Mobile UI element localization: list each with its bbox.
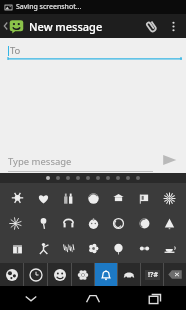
button[interactable]: Symbols	[141, 263, 163, 286]
button[interactable]: Emoji 6	[134, 188, 154, 208]
button[interactable]: Emoji 8	[7, 213, 27, 233]
staticText: !?#	[148, 270, 158, 280]
button[interactable]: Smileys	[48, 263, 71, 286]
button[interactable]: Emoji 3	[58, 188, 78, 208]
button[interactable]: Backspace	[164, 263, 186, 286]
button[interactable]: Objects	[95, 263, 117, 286]
button[interactable]: Emoji 4	[83, 188, 103, 208]
button[interactable]: Emoji 12	[108, 213, 128, 233]
button[interactable]: More options	[164, 17, 182, 35]
button[interactable]: Emoji 9	[33, 213, 53, 233]
button[interactable]: Emoji 21	[159, 238, 179, 258]
button[interactable]: Language	[0, 263, 23, 286]
staticText: New message	[29, 19, 103, 34]
button[interactable]: Emoji 15	[7, 238, 27, 258]
button[interactable]: Emoji 20	[134, 238, 154, 258]
button[interactable]: Emoji 7	[159, 188, 179, 208]
staticText: Type message	[8, 155, 72, 168]
button[interactable]: Emoji 2	[33, 188, 53, 208]
button[interactable]: Places	[118, 263, 140, 286]
button[interactable]: Home	[62, 286, 124, 310]
button[interactable]: Send	[157, 148, 181, 172]
button[interactable]: Emoji 19	[108, 238, 128, 258]
button[interactable]: Hide keyboard	[0, 286, 62, 310]
staticText: Saving screenshot...	[16, 2, 82, 12]
button[interactable]: To	[8, 43, 182, 58]
button[interactable]: Recent	[24, 263, 47, 286]
button[interactable]: Emoji 17	[58, 238, 78, 258]
button[interactable]: Emoji 13	[134, 213, 154, 233]
button[interactable]: Emoji 11	[83, 213, 103, 233]
button[interactable]: Nature	[72, 263, 94, 286]
button[interactable]: Emoji 1	[7, 188, 27, 208]
button[interactable]: Emoji 5	[108, 188, 128, 208]
button[interactable]: Emoji 10	[58, 213, 78, 233]
button[interactable]: Attach	[140, 15, 162, 37]
button[interactable]: Emoji 18	[83, 238, 103, 258]
button[interactable]: Type message	[8, 147, 153, 173]
button[interactable]: Emoji 16	[33, 238, 53, 258]
button[interactable]: Emoji 14	[159, 213, 179, 233]
staticText: To	[10, 44, 21, 57]
button[interactable]: Recent apps	[124, 286, 186, 310]
